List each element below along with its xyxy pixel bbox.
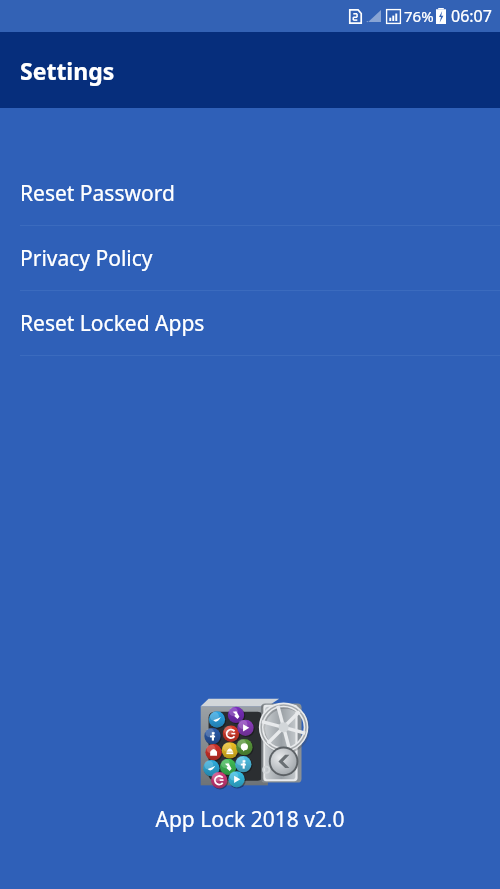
staticText: 06:07 <box>451 5 492 27</box>
staticText: Settings <box>20 55 115 86</box>
staticText: Reset Password <box>20 179 175 208</box>
staticText: App Lock 2018 v2.0 <box>0 805 500 834</box>
other: App Lock icon <box>194 697 306 789</box>
button[interactable]: Reset Locked Apps <box>0 291 500 355</box>
staticText: 76% <box>404 6 434 26</box>
staticText: Privacy Policy <box>20 244 153 273</box>
staticText: Reset Locked Apps <box>20 309 205 338</box>
button[interactable]: Reset Password <box>0 161 500 225</box>
button[interactable]: Privacy Policy <box>0 226 500 290</box>
